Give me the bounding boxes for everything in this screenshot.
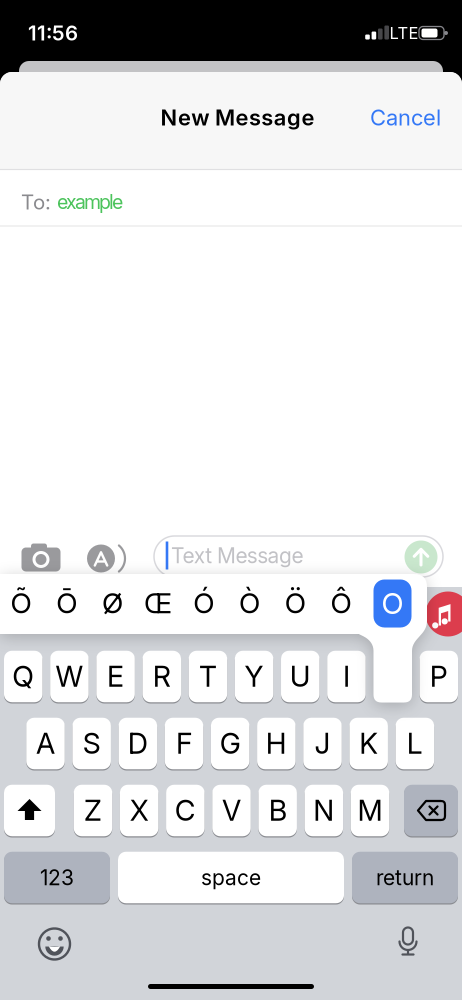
- button[interactable]: N: [305, 784, 343, 837]
- staticText: Text Message: [171, 543, 303, 568]
- staticText: Ó: [193, 586, 214, 620]
- staticText: Œ: [144, 586, 172, 620]
- button[interactable]: Shift: [4, 784, 55, 837]
- staticText: New Message: [160, 104, 314, 131]
- staticText: U: [290, 659, 311, 694]
- button[interactable]: Z: [74, 784, 112, 837]
- staticText: N: [313, 793, 334, 828]
- button[interactable]: Delete: [404, 784, 458, 837]
- staticText: D: [128, 726, 148, 761]
- staticText: E: [107, 659, 124, 694]
- button[interactable]: T: [189, 650, 227, 703]
- button[interactable]: Camera: [19, 541, 63, 573]
- staticText: To:: [21, 190, 51, 214]
- staticText: W: [55, 659, 83, 694]
- button[interactable]: A: [26, 717, 65, 770]
- staticText: Z: [84, 793, 102, 828]
- button[interactable]: Ö: [273, 575, 317, 631]
- button[interactable]: Y: [235, 650, 273, 703]
- button[interactable]: Õ: [0, 575, 43, 631]
- button[interactable]: G: [211, 717, 249, 770]
- button[interactable]: Cancel: [321, 104, 441, 131]
- staticText: Ò: [239, 586, 260, 620]
- button[interactable]: W: [50, 650, 89, 703]
- button[interactable]: Ø: [90, 575, 134, 631]
- staticText: F: [176, 726, 192, 761]
- staticText: Ö: [285, 586, 306, 620]
- staticText: K: [359, 726, 378, 761]
- button[interactable]: X: [120, 784, 158, 837]
- button[interactable]: Text Message: [154, 536, 443, 577]
- staticText: Q: [12, 659, 34, 694]
- button[interactable]: E: [96, 650, 135, 703]
- staticText: C: [175, 793, 196, 828]
- button[interactable]: 123: [4, 851, 110, 904]
- staticText: example: [57, 190, 123, 214]
- staticText: L: [407, 726, 423, 761]
- button[interactable]: Send: [404, 540, 437, 573]
- button[interactable]: V: [212, 784, 251, 837]
- staticText: J: [314, 726, 330, 761]
- button[interactable]: R: [142, 650, 181, 703]
- staticText: T: [199, 659, 217, 694]
- staticText: G: [220, 726, 241, 761]
- staticText: space: [201, 865, 261, 890]
- button[interactable]: O: [373, 579, 411, 627]
- button[interactable]: Ò: [227, 575, 271, 631]
- staticText: Cancel: [370, 104, 441, 131]
- button[interactable]: Dictation: [390, 925, 425, 960]
- staticText: LTE: [389, 23, 418, 43]
- button[interactable]: M: [351, 784, 389, 837]
- staticText: B: [269, 793, 287, 828]
- staticText: I: [343, 659, 350, 694]
- button[interactable]: J: [303, 717, 342, 770]
- button[interactable]: L: [396, 717, 434, 770]
- staticText: Y: [245, 659, 264, 694]
- button[interactable]: Apps: [83, 540, 141, 576]
- staticText: A: [36, 726, 55, 761]
- button[interactable]: Œ: [136, 575, 180, 631]
- staticText: R: [153, 659, 171, 694]
- button[interactable]: F: [165, 717, 203, 770]
- button[interactable]: H: [257, 717, 296, 770]
- staticText: O: [381, 586, 403, 621]
- button[interactable]: I: [327, 650, 366, 703]
- button[interactable]: Q: [4, 650, 42, 703]
- staticText: P: [430, 659, 448, 694]
- button[interactable]: K: [349, 717, 388, 770]
- staticText: Ô: [330, 586, 351, 620]
- staticText: 123: [40, 865, 74, 890]
- staticText: Ø: [102, 586, 123, 620]
- staticText: Õ: [10, 586, 31, 620]
- button[interactable]: return: [352, 851, 458, 904]
- button[interactable]: Ó: [182, 575, 226, 631]
- button[interactable]: Ō: [45, 575, 89, 631]
- button[interactable]: U: [281, 650, 319, 703]
- button[interactable]: B: [258, 784, 297, 837]
- button[interactable]: C: [166, 784, 205, 837]
- button[interactable]: P: [419, 650, 458, 703]
- button[interactable]: space: [118, 851, 344, 904]
- button[interactable]: Emoji: [37, 926, 72, 961]
- staticText: return: [376, 865, 434, 890]
- staticText: 11:56: [28, 21, 78, 45]
- button[interactable]: S: [72, 717, 111, 770]
- staticText: V: [222, 793, 241, 828]
- staticText: M: [357, 793, 382, 828]
- button[interactable]: Ô: [319, 575, 363, 631]
- staticText: S: [83, 726, 101, 761]
- staticText: X: [130, 793, 149, 828]
- staticText: H: [266, 726, 287, 761]
- button[interactable]: D: [119, 717, 157, 770]
- staticText: Ō: [56, 586, 77, 620]
